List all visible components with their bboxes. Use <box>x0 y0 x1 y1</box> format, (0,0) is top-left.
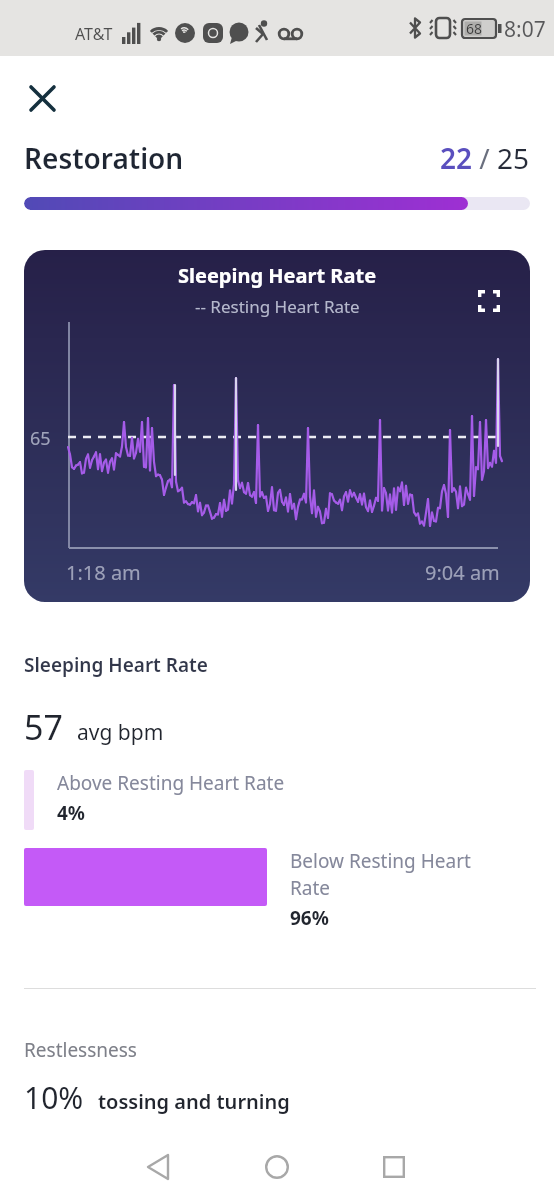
staticText: avg bpm <box>77 718 164 747</box>
button[interactable] <box>257 1147 297 1187</box>
staticText: Below Resting Heart Rate <box>290 848 500 901</box>
staticText: 57 <box>24 704 63 750</box>
staticText: Above Resting Heart Rate <box>57 770 285 796</box>
staticText: 65 <box>30 426 51 451</box>
staticText: -- Resting Heart Rate <box>195 295 360 318</box>
staticText: 96% <box>290 905 329 931</box>
staticText: tossing and turning <box>98 1088 290 1115</box>
staticText: AT&T <box>75 23 113 45</box>
staticText: 9:04 am <box>425 559 500 586</box>
button[interactable] <box>24 80 60 116</box>
staticText: 8:07 <box>504 15 546 44</box>
staticText: 22 / 25 <box>440 139 530 177</box>
button[interactable] <box>374 1147 414 1187</box>
staticText: Restlessness <box>24 1037 137 1063</box>
staticText: Sleeping Heart Rate <box>24 652 208 678</box>
staticText: 4% <box>57 800 86 826</box>
button[interactable] <box>138 1147 178 1187</box>
button[interactable] <box>474 286 504 316</box>
staticText: Restoration <box>24 139 184 177</box>
staticText: Sleeping Heart Rate <box>178 262 377 289</box>
staticText: 68 <box>466 19 483 38</box>
staticText: 10% <box>24 1077 84 1118</box>
staticText: 1:18 am <box>66 559 141 586</box>
